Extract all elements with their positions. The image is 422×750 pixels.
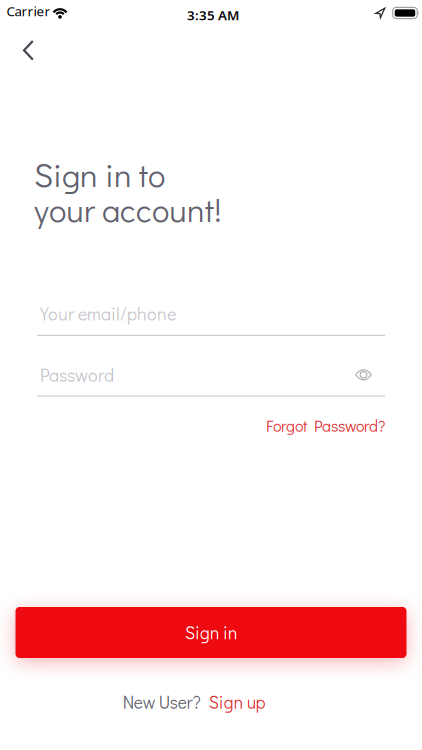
- staticText: Carrier: [6, 2, 50, 20]
- staticText: 3:35 AM: [187, 6, 239, 24]
- staticText: your account!: [34, 188, 222, 231]
- button[interactable]: Sign in: [15, 607, 406, 658]
- button[interactable]: Show password: [349, 362, 378, 387]
- button[interactable]: Sign up: [209, 690, 266, 713]
- staticText: Your email/phone: [40, 302, 176, 325]
- staticText: Forgot Password?: [266, 415, 385, 436]
- button[interactable]: Forgot Password?: [266, 415, 385, 436]
- staticText: Sign in to: [34, 153, 165, 196]
- staticText: Sign up: [209, 690, 266, 713]
- staticText: Sign in: [185, 621, 237, 644]
- button[interactable]: Back: [0, 0, 44, 69]
- staticText: New User?: [123, 690, 201, 713]
- staticText: Password: [40, 363, 114, 387]
